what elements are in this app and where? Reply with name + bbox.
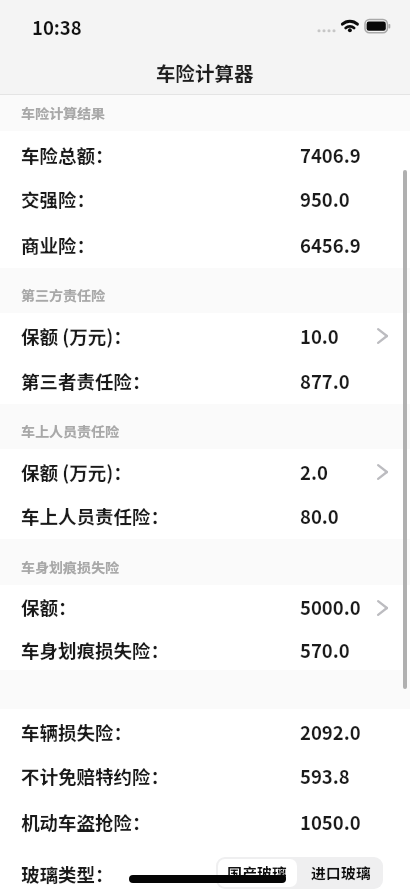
staticText: 5000.0 — [300, 594, 361, 621]
button[interactable]: 国产玻璃 — [218, 859, 297, 887]
staticText: 商业险： — [21, 232, 96, 259]
staticText: 机动车盗抢险： — [21, 809, 151, 836]
staticText: 车上人员责任险 — [21, 421, 119, 441]
staticText: 第三方责任险 — [21, 285, 105, 305]
button[interactable]: 不计免赔特约险： — [0, 754, 410, 799]
staticText: 2092.0 — [300, 719, 361, 746]
staticText: 950.0 — [300, 186, 350, 213]
button[interactable]: 保额 (万元)： — [0, 449, 410, 495]
button[interactable]: 进口玻璃 — [299, 857, 383, 889]
staticText: 不计免赔特约险： — [21, 763, 170, 790]
button[interactable]: 车险总额： — [0, 132, 410, 178]
staticText: 6456.9 — [300, 232, 361, 259]
button[interactable]: 商业险： — [0, 223, 410, 268]
staticText: 10:38 — [32, 14, 82, 41]
staticText: 80.0 — [300, 503, 339, 530]
button[interactable]: 玻璃类型： — [0, 845, 410, 892]
button[interactable]: 车身划痕损失险： — [0, 630, 410, 670]
staticText: 车身划痕损失险： — [21, 637, 170, 664]
button[interactable]: 第三者责任险： — [0, 359, 410, 404]
staticText: 570.0 — [300, 637, 350, 664]
other: Home indicator — [129, 875, 286, 883]
staticText: 877.0 — [300, 368, 350, 395]
button[interactable]: 交强险： — [0, 177, 410, 222]
staticText: 玻璃类型： — [21, 861, 114, 888]
staticText: 车上人员责任险： — [21, 503, 170, 530]
staticText: 进口玻璃 — [311, 862, 372, 884]
button[interactable]: 保额： — [0, 585, 410, 630]
staticText: 保额 (万元)： — [21, 459, 132, 486]
staticText: 保额： — [21, 594, 77, 621]
staticText: 第三者责任险： — [21, 368, 151, 395]
staticText: 车险总额： — [21, 142, 114, 169]
staticText: 国产玻璃 — [227, 862, 288, 884]
staticText: 2.0 — [300, 459, 328, 486]
staticText: 车险计算器 — [156, 58, 254, 86]
button[interactable]: 保额 (万元)： — [0, 313, 410, 359]
staticText: 保额 (万元)： — [21, 323, 132, 350]
staticText: 7406.9 — [300, 142, 361, 169]
staticText: 车身划痕损失险 — [21, 557, 119, 577]
button[interactable]: 车辆损失险： — [0, 709, 410, 755]
staticText: 交强险： — [21, 186, 96, 213]
staticText: 10.0 — [300, 323, 339, 350]
button[interactable]: 机动车盗抢险： — [0, 799, 410, 845]
staticText: 593.8 — [300, 763, 350, 790]
button[interactable]: 车上人员责任险： — [0, 494, 410, 539]
staticText: 1050.0 — [300, 809, 361, 836]
staticText: 车辆损失险： — [21, 719, 133, 746]
staticText: 车险计算结果 — [21, 103, 105, 123]
